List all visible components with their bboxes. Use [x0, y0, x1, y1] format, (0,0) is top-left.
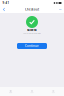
button[interactable]: Back [1, 6, 6, 13]
button[interactable]: Continue [17, 43, 47, 49]
staticText: Your order is confirmed [23, 33, 41, 34]
staticText: Continue [25, 44, 39, 48]
staticText: 9:41 [2, 1, 9, 5]
button[interactable]: Home [0, 87, 21, 96]
staticText: Checkout [25, 8, 39, 11]
staticText: Success! [27, 28, 37, 32]
button[interactable]: More [57, 6, 62, 13]
staticText: Help [58, 9, 61, 10]
